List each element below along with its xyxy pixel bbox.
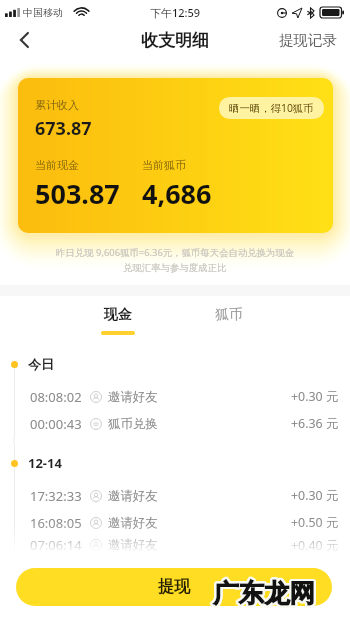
- staticText: 16:08:05: [30, 514, 82, 532]
- staticText: 晒一晒，得10狐币: [229, 101, 314, 115]
- button[interactable]: 07:06:14: [0, 536, 350, 554]
- staticText: 广东龙网: [215, 576, 317, 608]
- staticText: 中国移动: [23, 6, 63, 19]
- staticText: 邀请好友: [108, 515, 158, 531]
- staticText: 广东龙网: [212, 578, 314, 610]
- staticText: 广东龙网: [214, 575, 316, 607]
- staticText: 503.87: [35, 175, 120, 212]
- staticText: 广东龙网: [212, 575, 314, 607]
- staticText: 广东龙网: [213, 575, 315, 607]
- staticText: +0.50 元: [291, 514, 339, 531]
- staticText: 广东龙网: [211, 578, 313, 610]
- button[interactable]: 16:08:05: [0, 509, 350, 536]
- staticText: 4,686: [142, 175, 212, 212]
- staticText: 673.87: [35, 116, 92, 141]
- staticText: 广东龙网: [213, 577, 315, 609]
- staticText: +0.30 元: [291, 487, 339, 504]
- button[interactable]: 17:32:33: [0, 482, 350, 509]
- staticText: 17:32:33: [30, 487, 82, 505]
- button[interactable]: 提现记录: [265, 24, 350, 56]
- staticText: 邀请好友: [108, 389, 158, 405]
- staticText: 提现记录: [279, 31, 337, 49]
- staticText: 广东龙网: [211, 577, 313, 609]
- button[interactable]: 现金: [92, 300, 144, 341]
- staticText: 08:08:02: [30, 388, 82, 406]
- staticText: 现金: [104, 306, 132, 324]
- staticText: 广东龙网: [212, 579, 314, 611]
- staticText: +6.36 元: [291, 415, 339, 432]
- staticText: 当前现金: [35, 158, 79, 172]
- staticText: 累计收入: [35, 98, 79, 112]
- button[interactable]: Back: [0, 24, 48, 56]
- staticText: 广东龙网: [213, 577, 315, 609]
- staticText: 广东龙网: [214, 578, 316, 610]
- staticText: 12-14: [28, 454, 62, 472]
- staticText: 广东龙网: [215, 577, 317, 609]
- staticText: 狐币: [215, 306, 243, 324]
- staticText: 07:06:14: [30, 536, 82, 554]
- staticText: 广东龙网: [213, 578, 315, 610]
- staticText: +0.40 元: [291, 537, 339, 554]
- staticText: 提现: [158, 577, 190, 597]
- staticText: 广东龙网: [212, 576, 314, 608]
- button[interactable]: 狐币: [203, 300, 255, 341]
- staticText: 邀请好友: [108, 537, 158, 553]
- staticText: 广东龙网: [211, 576, 313, 608]
- staticText: 邀请好友: [108, 488, 158, 504]
- staticText: 广东龙网: [214, 576, 316, 608]
- button[interactable]: 晒一晒，得10狐币: [219, 97, 324, 119]
- button[interactable]: 08:08:02: [0, 383, 350, 410]
- staticText: 兑现汇率与参与度成正比: [123, 262, 227, 274]
- staticText: 收支明细: [141, 30, 209, 51]
- staticText: 当前狐币: [142, 158, 186, 172]
- staticText: 00:00:43: [30, 415, 82, 433]
- staticText: 广东龙网: [214, 579, 316, 611]
- staticText: 广东龙网: [214, 577, 316, 609]
- button[interactable]: 提现: [16, 568, 332, 606]
- staticText: 下午12:59: [150, 5, 201, 20]
- button[interactable]: 00:00:43: [0, 410, 350, 437]
- staticText: 狐币兑换: [108, 416, 158, 432]
- staticText: 广东龙网: [215, 578, 317, 610]
- staticText: +0.30 元: [291, 388, 339, 405]
- staticText: 广东龙网: [212, 577, 314, 609]
- staticText: 今日: [28, 356, 54, 372]
- staticText: 广东龙网: [213, 579, 315, 611]
- staticText: 昨日兑现 9,606狐币=6.36元，狐币每天会自动兑换为现金: [56, 246, 295, 259]
- staticText: 广东龙网: [213, 576, 315, 608]
